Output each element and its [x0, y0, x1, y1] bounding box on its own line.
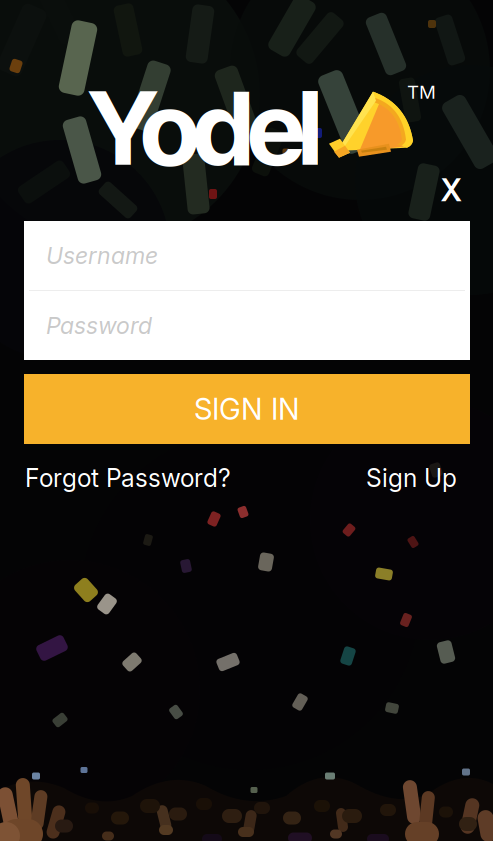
staticText: Password [46, 311, 152, 340]
button[interactable]: Close [429, 170, 473, 210]
staticText: X [440, 171, 461, 208]
staticText: Username [46, 241, 158, 270]
button[interactable]: Sign Up [366, 458, 457, 498]
staticText: TM [407, 81, 436, 103]
button[interactable]: Password [24, 291, 470, 360]
button[interactable]: SIGN IN [24, 374, 470, 444]
button[interactable]: Forgot Password? [24, 458, 231, 498]
button[interactable]: Username [24, 221, 470, 290]
staticText: Sign Up [366, 463, 457, 493]
staticText: Yodel [88, 67, 322, 189]
staticText: Forgot Password? [25, 463, 231, 493]
staticText: SIGN IN [194, 391, 300, 427]
